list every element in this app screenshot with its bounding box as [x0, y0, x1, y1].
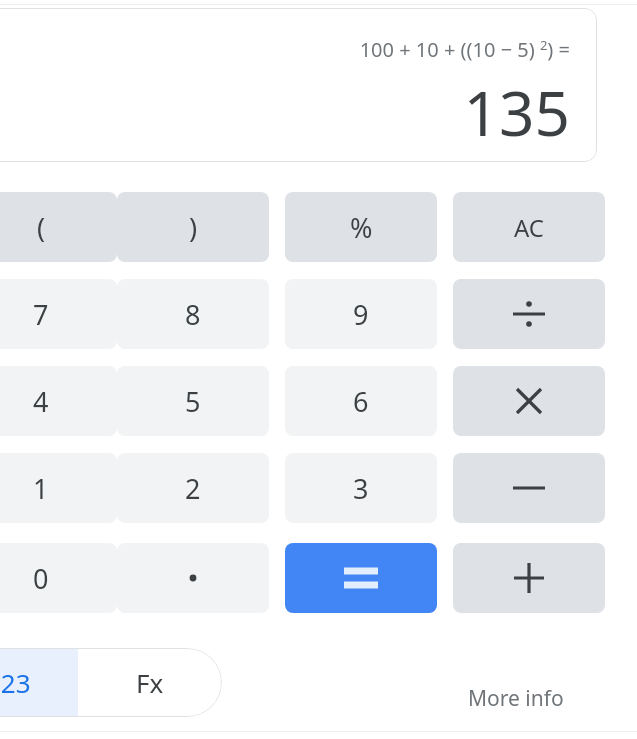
staticText: AC — [514, 211, 545, 244]
button[interactable]: Equals — [285, 543, 437, 613]
button[interactable]: Minus — [453, 453, 605, 523]
staticText: % — [350, 209, 373, 246]
button[interactable]: % — [285, 192, 437, 262]
staticText: ( — [37, 209, 46, 246]
button[interactable]: ) — [117, 192, 269, 262]
button[interactable]: Plus — [453, 543, 605, 613]
button[interactable]: 2 — [117, 453, 269, 523]
staticText: 135 — [463, 70, 570, 154]
staticText: 8 — [185, 296, 201, 333]
staticText: 6 — [353, 383, 369, 420]
button[interactable]: More info — [468, 678, 564, 718]
staticText: More info — [468, 684, 564, 713]
staticText: 100 + 10 + ((10 − 5) 2) = — [359, 36, 570, 63]
staticText: 9 — [353, 296, 369, 333]
button[interactable]: 7 — [0, 279, 117, 349]
staticText: Fx — [136, 665, 164, 700]
staticText: 4 — [33, 383, 49, 420]
button[interactable]: Decimal point — [117, 543, 269, 613]
button[interactable]: Multiply — [453, 366, 605, 436]
button[interactable]: 9 — [285, 279, 437, 349]
staticText: 2 — [185, 470, 201, 507]
button[interactable]: 6 — [285, 366, 437, 436]
button[interactable]: Divide — [453, 279, 605, 349]
staticText: 7 — [33, 296, 49, 333]
button[interactable]: 1 — [0, 453, 117, 523]
staticText: 5 — [185, 383, 201, 420]
button[interactable]: 0 — [0, 543, 117, 613]
staticText: 123 — [0, 665, 31, 700]
staticText: 1 — [33, 470, 49, 507]
button[interactable]: AC — [453, 192, 605, 262]
staticText: 3 — [353, 470, 369, 507]
button[interactable]: 100 + 10 + ((10 − 5) 2) = — [0, 8, 597, 162]
button[interactable]: 123 — [0, 648, 78, 717]
staticText: 0 — [33, 560, 49, 597]
button[interactable]: 8 — [117, 279, 269, 349]
button[interactable]: 3 — [285, 453, 437, 523]
staticText: ) — [189, 209, 198, 246]
button[interactable]: 5 — [117, 366, 269, 436]
button[interactable]: ( — [0, 192, 117, 262]
button[interactable]: 4 — [0, 366, 117, 436]
button[interactable]: Fx — [78, 648, 222, 717]
